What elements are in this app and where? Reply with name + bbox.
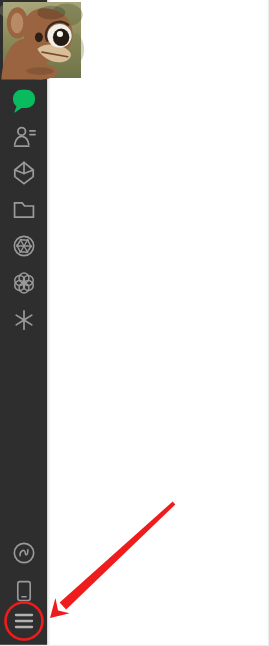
button[interactable]: Phone xyxy=(5,574,43,608)
button[interactable]: Favorites xyxy=(5,303,43,337)
button[interactable]: Camera xyxy=(5,229,43,263)
button[interactable]: Files xyxy=(5,193,43,227)
button[interactable]: More menu xyxy=(5,604,43,638)
button[interactable]: Chats xyxy=(5,83,43,117)
button[interactable]: Mini programs xyxy=(5,536,43,570)
button[interactable]: Mini apps xyxy=(5,266,43,300)
button[interactable]: Contacts xyxy=(5,119,43,153)
button[interactable]: Discover xyxy=(5,156,43,190)
button[interactable]: Profile avatar xyxy=(3,2,81,78)
